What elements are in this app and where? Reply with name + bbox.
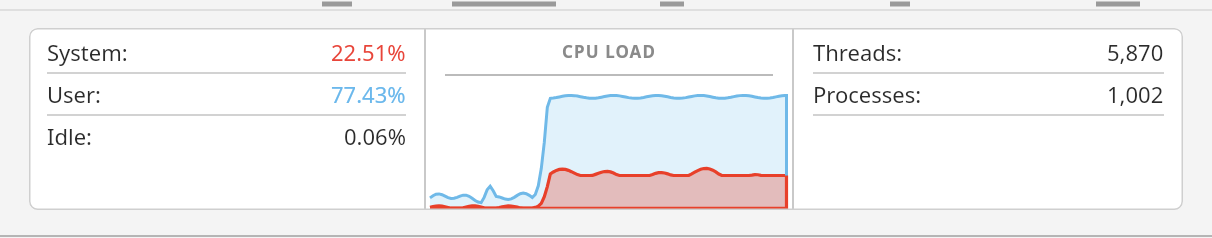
staticText: 77.43% — [331, 79, 406, 109]
button[interactable]: Threads: — [794, 32, 1183, 72]
button[interactable]: User: — [29, 74, 424, 114]
staticText: 5,870 — [1107, 37, 1164, 67]
staticText: Idle: — [47, 121, 92, 151]
staticText: 22.51% — [331, 37, 406, 67]
staticText: Threads: — [813, 37, 903, 67]
button[interactable]: System: — [29, 32, 424, 72]
staticText: 0.06% — [344, 121, 406, 151]
button[interactable]: Processes: — [794, 74, 1183, 114]
staticText: User: — [47, 79, 102, 109]
staticText: Processes: — [813, 79, 922, 109]
staticText: CPU LOAD — [562, 40, 657, 63]
button[interactable]: Idle: — [29, 116, 424, 156]
staticText: System: — [47, 37, 128, 67]
staticText: 1,002 — [1107, 79, 1164, 109]
